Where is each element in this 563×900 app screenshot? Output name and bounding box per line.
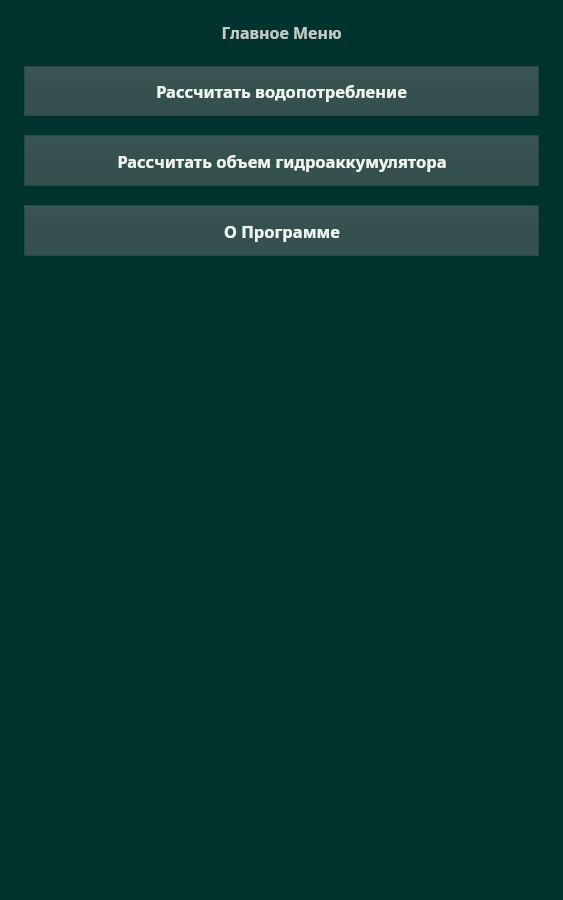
staticText: Рассчитать водопотребление: [156, 80, 407, 102]
staticText: Главное Меню: [221, 22, 342, 44]
staticText: О Программе: [224, 220, 340, 242]
staticText: Рассчитать объем гидроаккумулятора: [117, 150, 447, 172]
button[interactable]: Рассчитать водопотребление: [24, 66, 539, 116]
button[interactable]: О Программе: [24, 205, 539, 256]
button[interactable]: Рассчитать объем гидроаккумулятора: [24, 135, 539, 186]
